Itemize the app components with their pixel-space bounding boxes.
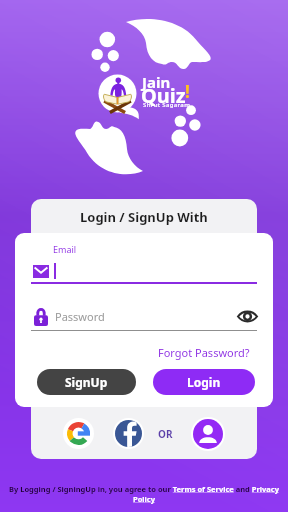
button[interactable]: Show password — [238, 310, 257, 323]
staticText: Email — [53, 243, 77, 255]
button[interactable]: Sign in with Google — [63, 418, 94, 449]
staticText: Password — [55, 309, 105, 324]
staticText: ! — [185, 80, 190, 103]
button[interactable]: Continue as guest — [191, 417, 225, 451]
button[interactable]: By Logging / SigningUp in, you agree to … — [8, 484, 280, 504]
button[interactable]: SignUp — [37, 369, 136, 395]
button[interactable]: Forgot Password? — [155, 343, 253, 362]
staticText: Forgot Password? — [158, 345, 250, 360]
staticText: Jain — [142, 72, 171, 92]
staticText: OR — [158, 427, 173, 441]
staticText: By Logging / SigningUp in, you agree to … — [8, 484, 280, 504]
staticText: Login — [187, 374, 221, 390]
staticText: Login / SignUp With — [80, 208, 208, 226]
button[interactable]: Sign in with Facebook — [113, 418, 144, 449]
staticText: Quiz — [141, 82, 186, 109]
staticText: Shrut Sagaram — [143, 101, 191, 109]
button[interactable]: OR — [158, 427, 173, 441]
button[interactable]: Login — [153, 369, 255, 395]
staticText: SignUp — [65, 374, 108, 390]
